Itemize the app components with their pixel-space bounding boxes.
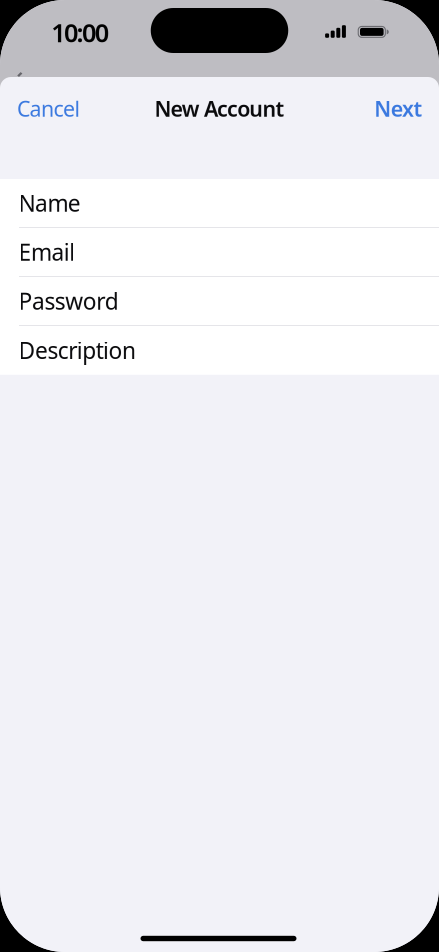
staticText: Next — [374, 94, 422, 123]
staticText: 10:00 — [51, 16, 109, 49]
staticText: Cancel — [17, 94, 80, 123]
button[interactable]: Name — [0, 179, 439, 228]
staticText: Description — [18, 335, 136, 365]
button[interactable]: Password — [0, 277, 439, 326]
staticText: New Account — [154, 94, 284, 123]
button[interactable]: Description — [0, 326, 439, 374]
staticText: Email — [18, 237, 75, 267]
staticText: Password — [18, 286, 119, 316]
button[interactable]: Cancel — [17, 94, 80, 123]
button[interactable]: Email — [0, 228, 439, 277]
button[interactable]: Next — [374, 94, 422, 123]
staticText: Name — [18, 188, 81, 218]
